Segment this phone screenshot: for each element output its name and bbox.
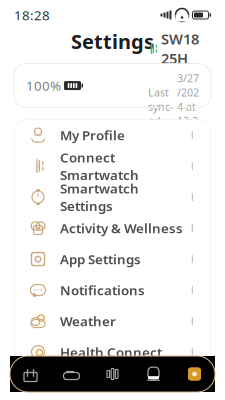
button[interactable]: Steps xyxy=(51,356,92,392)
staticText: SW1825H xyxy=(161,29,199,68)
staticText: Health Connect xyxy=(60,343,162,361)
staticText: My Profile xyxy=(60,126,125,144)
staticText: 3/27/2024 at 12:20 xyxy=(177,71,199,142)
button[interactable]: Home xyxy=(10,356,51,392)
button[interactable]: Weather xyxy=(14,306,211,337)
button[interactable]: Smartwatch Settings xyxy=(14,182,211,213)
button[interactable]: 100% xyxy=(14,64,211,108)
staticText: Weather xyxy=(60,312,116,330)
staticText: Notifications xyxy=(60,281,145,299)
button[interactable]: Connect Smartwatch xyxy=(14,151,211,182)
button[interactable]: Stats xyxy=(92,356,133,392)
button[interactable]: My Profile xyxy=(14,120,211,151)
staticText: 18:28 xyxy=(14,6,50,24)
button[interactable]: Settings xyxy=(174,356,215,392)
staticText: Connect Smartwatch xyxy=(60,148,139,184)
button[interactable]: Activity & Wellness xyxy=(14,213,211,244)
staticText: Smartwatch Settings xyxy=(60,179,139,215)
button[interactable]: App Settings xyxy=(14,244,211,275)
staticText: Settings xyxy=(71,28,154,55)
staticText: Last synced xyxy=(148,85,173,128)
button[interactable]: Alerts xyxy=(133,356,174,392)
button[interactable]: Health Connect xyxy=(14,337,211,368)
staticText: 100% xyxy=(26,77,61,94)
staticText: App Settings xyxy=(60,250,141,268)
staticText: Activity & Wellness xyxy=(60,219,183,237)
button[interactable]: Notifications xyxy=(14,275,211,306)
